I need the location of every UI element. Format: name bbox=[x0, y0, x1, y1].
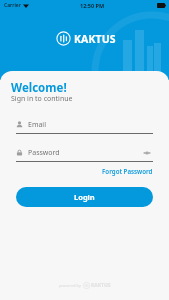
staticText: Login bbox=[74, 192, 95, 202]
staticText: Sign in to continue bbox=[11, 94, 73, 104]
staticText: Password bbox=[28, 148, 60, 157]
button[interactable]: Email bbox=[16, 120, 153, 134]
staticText: powered by bbox=[59, 283, 81, 288]
staticText: Forgot Password bbox=[102, 167, 153, 175]
button[interactable]: Forgot Password bbox=[102, 167, 153, 175]
staticText: Carrier bbox=[4, 2, 21, 9]
button[interactable]: Login bbox=[16, 187, 153, 207]
staticText: 12:50 PM bbox=[80, 2, 105, 9]
staticText: KAKTUS bbox=[91, 282, 111, 289]
staticText: Email bbox=[28, 120, 46, 129]
button[interactable]: Show password bbox=[143, 148, 153, 157]
staticText: Welcome! bbox=[11, 80, 67, 96]
staticText: KAKTUS bbox=[74, 32, 116, 46]
